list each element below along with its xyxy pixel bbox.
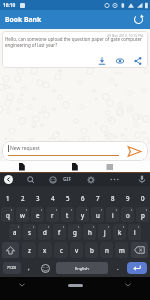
button[interactable]: j [98,224,111,240]
button[interactable]: , [22,259,35,277]
button[interactable]: x [38,242,52,258]
button[interactable]: i [106,207,119,222]
button[interactable]: 5 [60,189,75,206]
staticText: e [36,211,40,219]
button[interactable] [131,242,148,258]
staticText: 7 [96,194,100,202]
button[interactable] [133,14,144,25]
button[interactable]: b [85,242,98,258]
button[interactable]: p [136,207,149,222]
button[interactable]: c [54,242,68,258]
staticText: v [75,246,79,254]
button[interactable]: 6 [75,189,90,206]
staticText: GIF [63,176,72,183]
button[interactable]: 1 [0,189,15,206]
button[interactable]: l [128,224,141,240]
button[interactable]: 2 [15,189,30,206]
button[interactable]: 29 Nov 2019, 10:15 PM [2,31,148,68]
button[interactable]: 7 [90,189,105,206]
button[interactable]: v [70,242,83,258]
button[interactable]: 0 [135,189,150,206]
staticText: y [81,211,85,219]
staticText: o [126,211,130,219]
staticText: l [134,228,136,236]
staticText: b [90,246,94,254]
button[interactable]: 9 [120,189,135,206]
button[interactable]: 3 [30,189,45,206]
staticText: 5 [66,194,70,202]
staticText: English [75,266,89,271]
staticText: w [20,211,25,219]
button[interactable]: t [61,207,74,222]
button[interactable]: d [38,224,51,240]
staticText: Book Bank [5,15,42,24]
button[interactable]: ?123 [3,262,21,274]
staticText: i [112,211,114,219]
staticText: ?123 [7,265,17,271]
staticText: x [43,246,47,254]
staticText: 29 Nov 2019, 10:15 PM [107,33,144,38]
button[interactable]: o [121,207,134,222]
button[interactable] [72,163,78,171]
button[interactable]: m [115,242,128,258]
staticText: 2 [21,194,25,202]
button[interactable]: f [53,224,66,240]
button[interactable] [35,259,55,277]
button[interactable]: w [16,207,29,222]
button[interactable]: u [91,207,104,222]
staticText: n [105,246,109,254]
button[interactable]: s [23,224,36,240]
button[interactable]: h [83,224,96,240]
staticText: c [60,246,63,254]
staticText: q [6,211,10,219]
button[interactable]: English [56,262,108,274]
staticText: 4 [51,194,55,202]
button[interactable]: 8 [105,189,120,206]
button[interactable]: n [100,242,113,258]
button[interactable] [2,242,19,258]
staticText: a [13,228,17,236]
staticText: z [28,246,31,254]
button[interactable]: GIF [63,176,72,183]
button[interactable] [68,284,83,287]
button[interactable] [134,57,142,65]
staticText: k [118,228,122,236]
staticText: r [51,211,54,219]
button[interactable]: z [22,242,36,258]
staticText: New request [10,145,40,152]
button[interactable] [138,175,146,185]
button[interactable]: New request [2,141,148,161]
staticText: engineering of last year? [5,42,58,48]
button[interactable] [127,145,142,158]
button[interactable] [27,176,35,184]
button[interactable] [19,163,25,171]
button[interactable]: r [46,207,59,222]
button[interactable] [127,262,147,274]
button[interactable]: a [9,224,21,240]
button[interactable] [87,176,95,184]
staticText: 1 [6,194,10,202]
button[interactable]: g [68,224,81,240]
staticText: 3 [36,194,40,202]
staticText: s [28,228,31,236]
staticText: d [43,228,47,236]
staticText: g [73,228,77,236]
button[interactable]: e [31,207,44,222]
button[interactable]: y [76,207,89,222]
staticText: f [58,228,61,236]
button[interactable] [98,57,106,65]
staticText: t [66,211,69,219]
staticText: 6 [81,194,85,202]
staticText: 9 [126,194,130,202]
button[interactable] [49,176,57,184]
button[interactable]: 4 [45,189,60,206]
staticText: h [88,228,92,236]
staticText: u [96,211,100,219]
button[interactable] [106,164,114,170]
button[interactable]: k [113,224,126,240]
button[interactable] [110,178,119,181]
button[interactable]: q [1,207,14,222]
button[interactable] [4,175,13,184]
button[interactable] [116,57,124,65]
button[interactable]: . [109,259,127,277]
